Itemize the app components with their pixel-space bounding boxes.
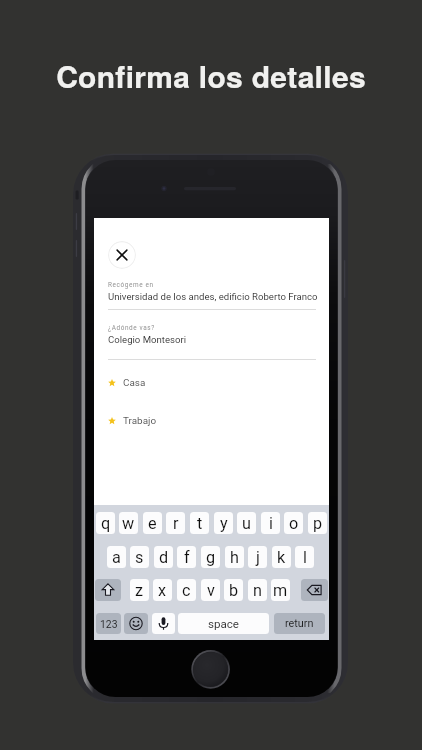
button[interactable]: u [237, 512, 256, 534]
staticText: return [285, 617, 314, 630]
staticText: c [182, 581, 191, 600]
staticText: r [173, 514, 179, 533]
staticText: l [303, 548, 307, 567]
staticText: f [184, 548, 190, 567]
staticText: k [277, 548, 286, 567]
button[interactable]: a [107, 546, 126, 568]
staticText: Recógeme en [108, 281, 154, 289]
button[interactable]: j [248, 546, 267, 568]
button[interactable]: e [143, 512, 162, 534]
staticText: h [230, 548, 239, 567]
staticText: p [313, 514, 323, 533]
button[interactable]: w [119, 512, 138, 534]
button[interactable]: r [166, 512, 185, 534]
button[interactable]: n [248, 579, 267, 601]
staticText: o [289, 514, 299, 533]
button[interactable]: q [96, 512, 115, 534]
staticText: s [135, 548, 144, 567]
button[interactable]: f [177, 546, 196, 568]
button[interactable]: y [214, 512, 233, 534]
staticText: i [269, 514, 273, 533]
button[interactable]: s [130, 546, 149, 568]
button[interactable]: b [224, 579, 243, 601]
staticText: Trabajo [123, 415, 157, 427]
button[interactable]: Emoji [124, 613, 148, 634]
button[interactable]: m [271, 579, 290, 601]
button[interactable]: Shift [95, 579, 121, 601]
staticText: n [253, 581, 262, 600]
button[interactable]: d [154, 546, 173, 568]
button[interactable]: z [130, 579, 149, 601]
staticText: m [273, 581, 288, 600]
button[interactable]: return [274, 613, 325, 634]
button[interactable]: Trabajo [94, 411, 329, 431]
button[interactable]: x [153, 579, 172, 601]
button[interactable]: p [308, 512, 327, 534]
button[interactable]: g [201, 546, 220, 568]
button[interactable]: l [295, 546, 314, 568]
staticText: b [229, 581, 239, 600]
button[interactable]: v [201, 579, 220, 601]
button[interactable]: c [177, 579, 196, 601]
staticText: Casa [123, 377, 146, 389]
button[interactable]: o [284, 512, 303, 534]
button[interactable]: 123 [96, 613, 121, 634]
staticText: z [135, 581, 144, 600]
staticText: Universidad de los andes, edificio Rober… [108, 291, 318, 302]
staticText: u [242, 514, 251, 533]
button[interactable]: Casa [94, 373, 329, 393]
button[interactable]: t [190, 512, 209, 534]
button[interactable]: Backspace [301, 579, 328, 601]
staticText: w [122, 514, 135, 533]
staticText: Colegio Montesori [108, 334, 187, 345]
staticText: d [159, 548, 169, 567]
staticText: 123 [100, 618, 118, 630]
button[interactable]: Dictate [152, 613, 175, 634]
staticText: t [197, 514, 203, 533]
staticText: g [206, 548, 216, 567]
staticText: ¿Adónde vas? [108, 324, 155, 332]
button[interactable]: Close [108, 241, 136, 269]
staticText: x [158, 581, 167, 600]
staticText: j [256, 548, 260, 567]
staticText: space [208, 617, 240, 631]
staticText: q [101, 514, 111, 533]
button[interactable]: space [178, 613, 269, 634]
staticText: Confirma los detalles [0, 54, 422, 97]
staticText: e [148, 514, 157, 533]
button[interactable]: k [272, 546, 291, 568]
button[interactable]: h [225, 546, 244, 568]
button[interactable]: i [261, 512, 280, 534]
staticText: v [207, 581, 215, 600]
staticText: y [220, 514, 228, 533]
staticText: a [112, 548, 121, 567]
